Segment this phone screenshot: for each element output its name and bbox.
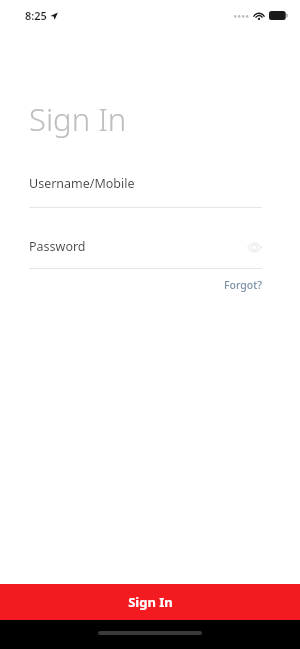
- button[interactable]: Forgot?: [212, 274, 300, 296]
- button[interactable]: Sign In: [0, 584, 300, 620]
- staticText: Forgot?: [224, 278, 262, 292]
- staticText: Username/Mobile: [29, 175, 135, 192]
- staticText: Sign In: [29, 98, 127, 140]
- staticText: 8:25: [25, 8, 47, 23]
- button[interactable]: Username/Mobile: [0, 175, 300, 208]
- button[interactable]: Password: [0, 238, 300, 269]
- staticText: Sign In: [128, 593, 173, 611]
- staticText: Password: [29, 238, 86, 255]
- button[interactable]: Show password: [246, 239, 262, 255]
